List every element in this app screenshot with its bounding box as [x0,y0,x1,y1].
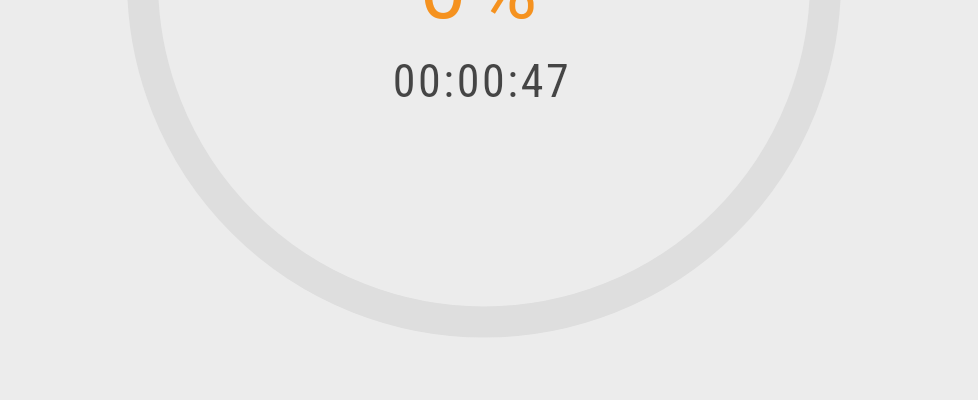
button[interactable]: Progress dial, 0 percent complete [127,0,841,24]
staticText: 00:00:47 [0,54,971,108]
staticText: 0% [0,0,973,38]
